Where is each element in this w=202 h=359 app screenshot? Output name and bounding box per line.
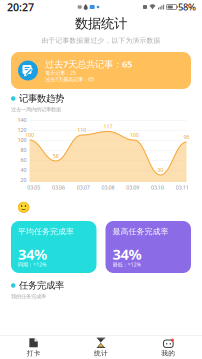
staticText: 100: [130, 131, 139, 139]
staticText: 40: [20, 166, 26, 174]
staticText: 58: [53, 152, 59, 160]
staticText: 03.10: [151, 184, 164, 191]
staticText: 打卡: [27, 349, 41, 357]
staticText: 34%: [112, 244, 141, 264]
staticText: 03.05: [27, 184, 40, 191]
button[interactable]: 过去7天总共记事：65: [11, 52, 191, 89]
staticText: 60: [20, 156, 26, 164]
staticText: 100: [17, 136, 26, 144]
staticText: 🙂: [17, 201, 30, 213]
staticText: 03.07: [77, 184, 90, 191]
staticText: 由于记事数据量过少，以下为演示数据: [41, 36, 160, 45]
staticText: 最高任务完成率: [112, 227, 168, 236]
staticText: 平均任务完成率: [18, 227, 74, 236]
staticText: 过去一周内的记事数据: [11, 106, 61, 113]
staticText: 96: [183, 133, 189, 141]
button[interactable]: 最高任务完成率: [105, 221, 191, 273]
staticText: 统计: [94, 349, 108, 357]
button[interactable]: 我的: [135, 337, 202, 357]
staticText: 110: [77, 126, 86, 134]
staticText: 03.11: [176, 184, 189, 191]
staticText: 58%: [178, 1, 196, 13]
staticText: 03.08: [101, 184, 114, 191]
staticText: 30: [157, 166, 163, 174]
staticText: 140: [17, 116, 26, 124]
staticText: 03.09: [126, 184, 139, 191]
staticText: 同期：+12%: [18, 261, 46, 268]
staticText: 120: [17, 126, 26, 134]
staticText: 03.06: [52, 184, 65, 191]
staticText: 20: [20, 176, 26, 184]
staticText: 记事数趋势: [19, 93, 64, 104]
staticText: 过去7天最高记事：65: [45, 76, 94, 83]
staticText: 任务完成率: [19, 280, 64, 291]
staticText: 80: [20, 146, 26, 154]
button[interactable]: 打卡: [0, 337, 67, 357]
staticText: 我的任务完成率: [11, 293, 46, 300]
staticText: 34%: [18, 244, 47, 264]
staticText: 我的: [161, 349, 175, 357]
staticText: 过去7天总共记事：65: [45, 58, 132, 70]
button[interactable]: 统计: [67, 337, 135, 357]
staticText: 100: [25, 131, 34, 139]
staticText: 20:27: [7, 0, 34, 14]
staticText: 数据统计: [75, 15, 127, 32]
button[interactable]: 平均任务完成率: [11, 221, 96, 273]
staticText: 每天记事：25: [45, 69, 76, 76]
staticText: 最低：+12%: [112, 261, 140, 268]
staticText: 117: [103, 123, 112, 130]
